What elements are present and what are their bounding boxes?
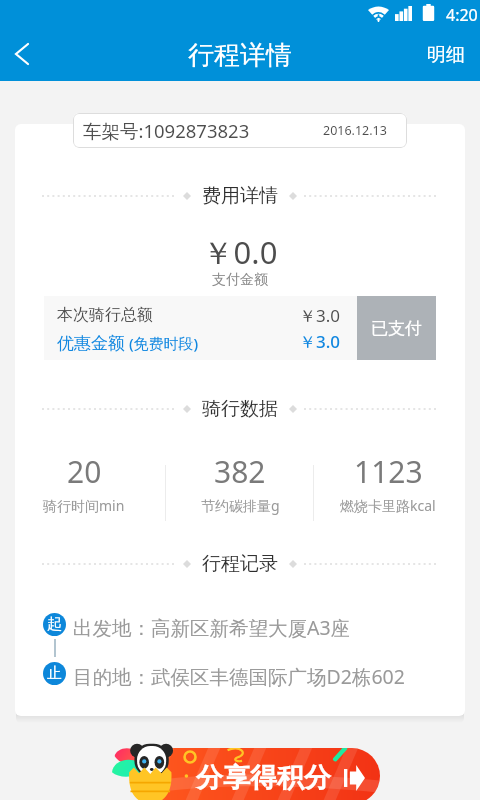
staticText: 节约碳排量g xyxy=(201,496,280,515)
button[interactable]: 明细 xyxy=(409,31,480,81)
staticText: 优惠金额 xyxy=(57,333,125,354)
staticText: 4:20 xyxy=(446,4,478,26)
staticText: 车架号:1092873823 xyxy=(83,118,250,143)
staticText: 分享得积分 xyxy=(196,761,331,795)
staticText: 1123 xyxy=(354,451,423,492)
staticText: 费用详情 xyxy=(202,184,278,208)
staticText: 已支付 xyxy=(371,318,422,339)
staticText: 明细 xyxy=(427,43,465,67)
button[interactable]: 已支付 xyxy=(357,296,436,360)
button[interactable]: 分享得积分 xyxy=(138,748,380,800)
staticText: 382 xyxy=(214,451,266,492)
button[interactable]: Back xyxy=(0,27,46,81)
staticText: 本次骑行总额 xyxy=(57,305,153,325)
staticText: 骑行时间min xyxy=(43,496,125,515)
staticText: 行程详情 xyxy=(188,39,292,72)
staticText: 止 xyxy=(47,664,62,683)
staticText: ￥3.0 xyxy=(299,330,341,353)
staticText: 骑行数据 xyxy=(202,397,278,421)
staticText: 起 xyxy=(47,615,62,634)
staticText: ￥0.0 xyxy=(15,231,465,273)
staticText: 目的地：武侯区丰德国际广场D2栋602 xyxy=(73,663,405,690)
staticText: ￥3.0 xyxy=(299,304,341,327)
staticText: 2016.12.13 xyxy=(323,122,387,139)
staticText: 出发地：高新区新希望大厦A3座 xyxy=(73,614,351,641)
staticText: 行程记录 xyxy=(202,552,278,576)
staticText: 支付金额 xyxy=(15,271,465,289)
staticText: (免费时段) xyxy=(125,333,199,353)
staticText: 燃烧卡里路kcal xyxy=(340,496,436,515)
staticText: 20 xyxy=(67,451,102,492)
